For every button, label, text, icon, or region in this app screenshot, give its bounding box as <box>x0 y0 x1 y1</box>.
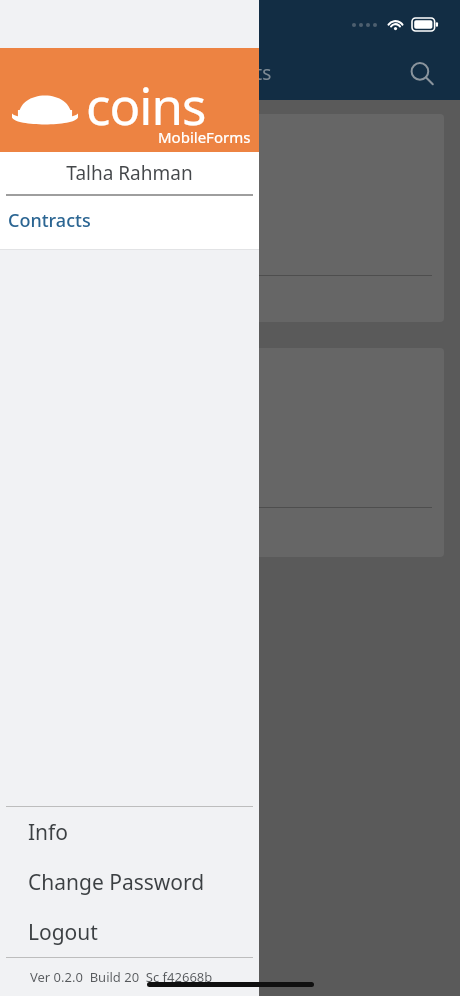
staticText: MobileForms <box>158 127 251 147</box>
button[interactable]: Not available <box>16 348 444 557</box>
staticText: Logout <box>28 918 98 947</box>
staticText: Contracts <box>186 60 272 86</box>
button[interactable]: Talha Rahman <box>0 152 259 194</box>
button[interactable]: Logout <box>0 907 259 957</box>
staticText: coins <box>86 70 206 139</box>
button[interactable]: Info <box>0 807 259 857</box>
staticText: Info <box>28 818 69 847</box>
button[interactable]: Contracts <box>0 196 259 249</box>
staticText: Ver 0.2.0 Build 20 Sc f42668b <box>30 968 213 986</box>
button[interactable]: Not available <box>16 114 444 322</box>
button[interactable]: Change Password <box>0 857 259 907</box>
button[interactable]: Search <box>400 52 444 96</box>
staticText: Change Password <box>28 868 205 897</box>
